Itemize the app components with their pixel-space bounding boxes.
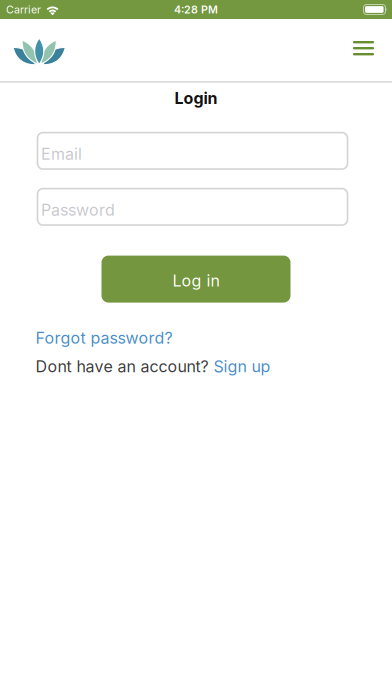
staticText: 4:28 PM [174,3,218,16]
button[interactable]: Email [37,133,347,169]
staticText: Forgot password? [35,329,172,347]
staticText: Log in [172,271,219,290]
staticText: Login [174,89,217,108]
staticText: Email [41,145,82,163]
staticText: Password [41,201,115,219]
staticText: Sign up [213,357,270,376]
staticText: Carrier [6,3,41,16]
staticText: Dont have an account? [35,357,213,376]
button[interactable]: Forgot password? [35,329,172,347]
button[interactable]: Log in [101,256,290,303]
button[interactable]: Menu [353,41,392,59]
button[interactable]: Password [37,189,347,225]
button[interactable]: Sign up [213,357,270,376]
